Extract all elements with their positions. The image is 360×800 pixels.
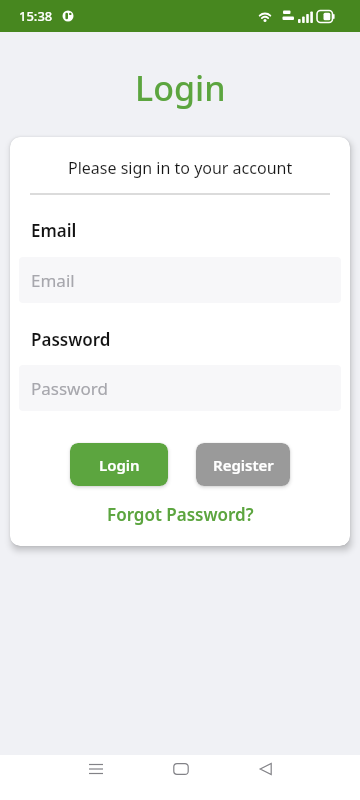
staticText: Email [31,269,75,292]
button[interactable] [53,755,138,783]
staticText: Password [31,377,108,400]
button[interactable]: Email [19,257,341,303]
staticText: Password [31,328,111,351]
button[interactable]: Password [19,365,341,411]
staticText: Email [31,219,77,242]
staticText: Login [99,455,140,475]
staticText: Register [213,455,274,475]
staticText: Login [135,65,226,111]
button[interactable]: Register [196,443,290,486]
staticText: 15:38 [19,7,53,25]
staticText: Please sign in to your account [68,157,293,179]
button[interactable] [223,755,308,783]
button[interactable]: Forgot Password? [107,503,254,526]
button[interactable] [138,755,223,783]
button[interactable]: Login [70,443,168,486]
